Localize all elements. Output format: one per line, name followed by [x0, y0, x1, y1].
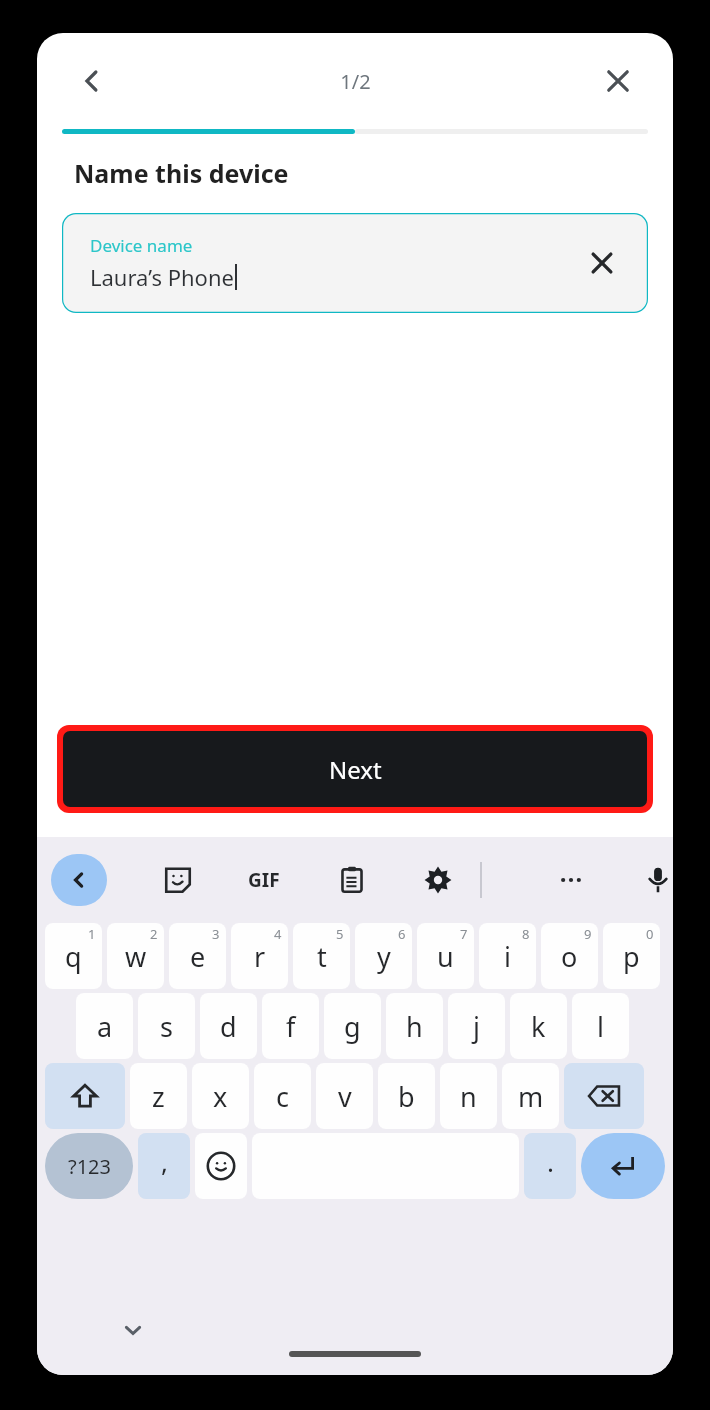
button[interactable]: a — [76, 993, 133, 1059]
staticText: 6 — [398, 925, 406, 943]
button[interactable]: Keyboard tool — [632, 854, 673, 906]
button[interactable]: z — [130, 1063, 187, 1129]
button[interactable]: Device name — [62, 213, 648, 313]
button[interactable]: y — [355, 923, 412, 989]
staticText: g — [344, 1008, 361, 1045]
staticText: 3 — [212, 925, 220, 943]
button[interactable]: . — [524, 1133, 576, 1199]
staticText: , — [161, 1144, 168, 1179]
button[interactable]: c — [254, 1063, 311, 1129]
button[interactable]: g — [324, 993, 381, 1059]
staticText: Next — [329, 753, 382, 786]
button[interactable]: Hide keyboard — [109, 1306, 157, 1354]
button[interactable]: Back — [63, 52, 121, 110]
button[interactable]: , — [138, 1133, 190, 1199]
button[interactable]: Keyboard tool — [326, 854, 378, 906]
staticText: q — [65, 938, 82, 975]
button[interactable]: s — [138, 993, 195, 1059]
staticText: p — [623, 938, 640, 975]
button[interactable]: Close — [589, 52, 647, 110]
staticText: e — [190, 938, 206, 975]
staticText: d — [220, 1008, 237, 1045]
staticText: Device name — [90, 234, 193, 257]
button[interactable]: w — [107, 923, 164, 989]
staticText: 9 — [584, 925, 592, 943]
staticText: s — [160, 1008, 173, 1045]
button[interactable]: m — [502, 1063, 559, 1129]
staticText: 7 — [460, 925, 468, 943]
button[interactable]: i — [479, 923, 536, 989]
staticText: 0 — [646, 925, 654, 943]
button[interactable]: Next — [63, 731, 647, 807]
button[interactable]: k — [510, 993, 567, 1059]
staticText: t — [317, 938, 327, 975]
button[interactable]: Backspace — [564, 1063, 644, 1129]
staticText: . — [547, 1144, 554, 1179]
staticText: h — [406, 1008, 423, 1045]
staticText: 1/2 — [340, 68, 371, 95]
staticText: 8 — [522, 925, 530, 943]
staticText: j — [473, 1008, 480, 1045]
staticText: ?123 — [68, 1153, 111, 1180]
button[interactable]: q — [45, 923, 102, 989]
button[interactable]: f — [262, 993, 319, 1059]
staticText: y — [377, 938, 391, 975]
button[interactable]: b — [378, 1063, 435, 1129]
button[interactable]: Shift — [45, 1063, 125, 1129]
button[interactable]: Keyboard tool — [152, 854, 204, 906]
staticText: v — [338, 1078, 352, 1115]
button[interactable]: p — [603, 923, 660, 989]
staticText: x — [213, 1078, 228, 1115]
button[interactable]: Keyboard tool — [412, 854, 464, 906]
button[interactable]: d — [200, 993, 257, 1059]
staticText: f — [286, 1008, 296, 1045]
button[interactable]: r — [231, 923, 288, 989]
staticText: a — [97, 1008, 113, 1045]
button[interactable]: Back — [51, 854, 107, 906]
button[interactable]: j — [448, 993, 505, 1059]
staticText: m — [518, 1078, 544, 1115]
staticText: l — [597, 1008, 604, 1045]
staticText: w — [125, 938, 147, 975]
staticText: Laura’s Phone — [90, 262, 234, 292]
staticText: 5 — [336, 925, 344, 943]
button[interactable]: Keyboard tool — [545, 854, 597, 906]
button[interactable]: x — [192, 1063, 249, 1129]
button[interactable]: Emoji — [195, 1133, 247, 1199]
staticText: b — [398, 1078, 415, 1115]
button[interactable]: e — [169, 923, 226, 989]
staticText: n — [460, 1078, 477, 1115]
button[interactable]: Enter — [581, 1133, 665, 1199]
button[interactable]: u — [417, 923, 474, 989]
staticText: Name this device — [74, 156, 289, 190]
button[interactable]: l — [572, 993, 629, 1059]
staticText: c — [276, 1078, 289, 1115]
staticText: k — [531, 1008, 546, 1045]
button[interactable]: h — [386, 993, 443, 1059]
button[interactable]: t — [293, 923, 350, 989]
staticText: u — [437, 938, 454, 975]
staticText: i — [504, 938, 511, 975]
staticText: 2 — [150, 925, 158, 943]
staticText: GIF — [248, 867, 280, 893]
staticText: r — [254, 938, 266, 975]
button[interactable]: Clear device name — [576, 237, 628, 289]
button[interactable]: o — [541, 923, 598, 989]
button[interactable]: ?123 — [45, 1133, 133, 1199]
button[interactable]: Keyboard tool — [238, 854, 290, 906]
staticText: o — [561, 938, 578, 975]
staticText: z — [152, 1078, 165, 1115]
button[interactable]: n — [440, 1063, 497, 1129]
staticText: 4 — [274, 925, 282, 943]
button[interactable]: v — [316, 1063, 373, 1129]
staticText: 1 — [88, 925, 96, 943]
